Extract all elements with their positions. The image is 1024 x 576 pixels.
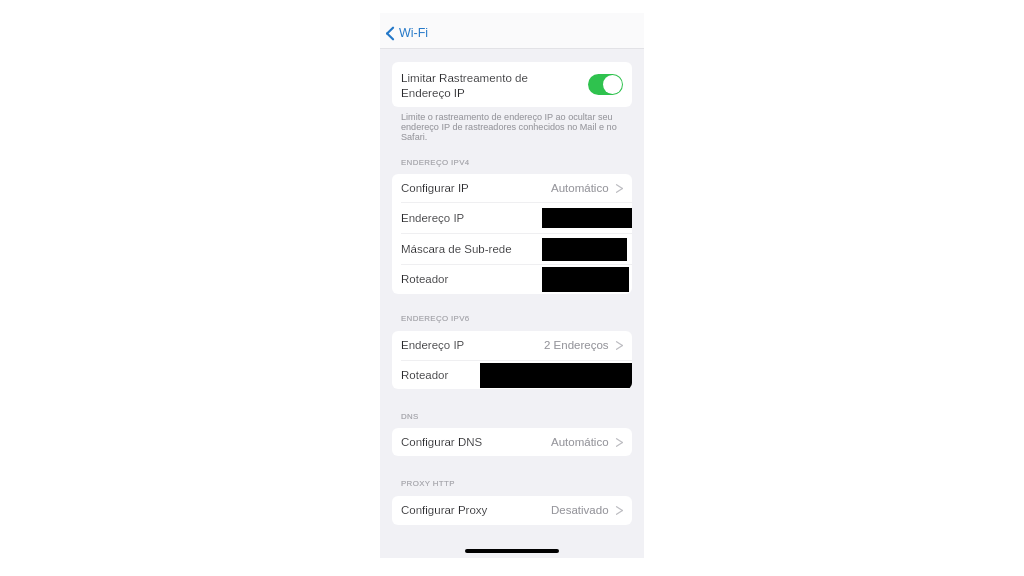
staticText: 2 Endereços	[544, 339, 609, 352]
staticText: Máscara de Sub-rede	[401, 243, 512, 256]
button[interactable]: Limitar Rastreamento de Endereço IP	[588, 74, 623, 95]
button[interactable]: Endereço IP	[392, 203, 632, 233]
button[interactable]: Limitar Rastreamento de Endereço IP	[392, 62, 632, 107]
staticText: Configurar Proxy	[401, 504, 488, 517]
staticText: Limite o rastreamento de endereço IP ao …	[401, 112, 622, 142]
button[interactable]: Configurar Proxy	[392, 496, 632, 525]
button[interactable]: Endereço IP	[392, 331, 632, 360]
staticText: Roteador	[401, 369, 449, 382]
staticText: ENDEREÇO IPV4	[401, 158, 470, 167]
staticText: Desativado	[551, 504, 609, 517]
button[interactable]: Back to Wi-Fi	[380, 13, 644, 48]
button[interactable]: Máscara de Sub-rede	[392, 234, 632, 264]
staticText: Endereço IP	[401, 212, 465, 225]
staticText: Configurar DNS	[401, 436, 483, 449]
button[interactable]: Configurar IP	[392, 174, 632, 202]
button[interactable]: Configurar DNS	[392, 428, 632, 456]
staticText: Configurar IP	[401, 182, 469, 195]
button[interactable]: Roteador	[392, 265, 632, 294]
button[interactable]: Roteador	[392, 361, 632, 389]
staticText: Limitar Rastreamento de Endereço IP	[401, 70, 528, 100]
staticText: Wi-Fi	[399, 27, 429, 40]
staticText: Roteador	[401, 273, 449, 286]
staticText: Automático	[551, 182, 609, 195]
staticText: Endereço IP	[401, 339, 465, 352]
staticText: ENDEREÇO IPV6	[401, 314, 470, 323]
staticText: DNS	[401, 412, 419, 421]
staticText: PROXY HTTP	[401, 479, 455, 488]
staticText: Automático	[551, 436, 609, 449]
